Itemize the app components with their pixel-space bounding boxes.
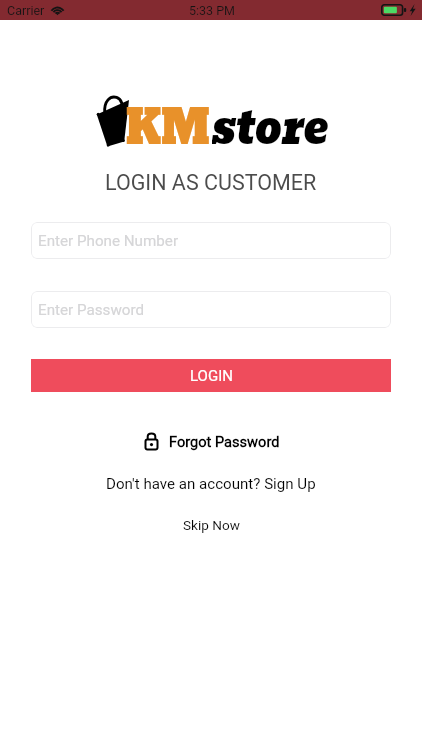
other: Forgot password — [143, 431, 160, 451]
staticText: LOGIN — [190, 367, 233, 385]
staticText: LOGIN AS CUSTOMER — [105, 170, 317, 195]
staticText: Don't have an account? Sign Up — [106, 475, 316, 493]
button[interactable]: Forgot password — [0, 429, 422, 453]
button[interactable]: Enter Password — [31, 291, 391, 328]
button[interactable]: Skip Now — [0, 514, 422, 536]
staticText: 5:33 PM — [189, 3, 236, 18]
staticText: KM — [126, 95, 210, 150]
staticText: store — [212, 89, 329, 144]
staticText: Enter Phone Number — [38, 232, 179, 250]
staticText: Carrier — [7, 3, 45, 18]
button[interactable]: Enter Phone Number — [31, 222, 391, 259]
staticText: Forgot Password — [169, 433, 280, 450]
button[interactable]: Don't have an account? Sign Up — [0, 472, 422, 496]
other: KM Store logo — [96, 93, 130, 148]
staticText: Skip Now — [183, 517, 240, 533]
staticText: Enter Password — [38, 301, 145, 319]
button[interactable]: LOGIN — [31, 359, 391, 392]
